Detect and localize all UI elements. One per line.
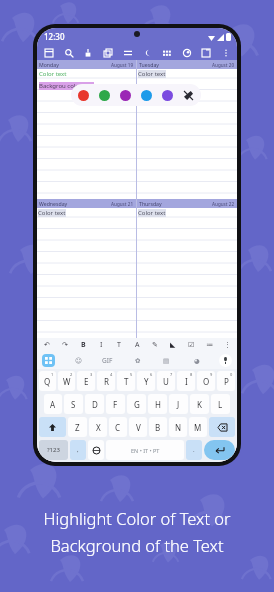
staticText: Backgrou color text [39, 82, 94, 90]
button[interactable]: No color [183, 90, 194, 101]
button[interactable]: O [197, 371, 215, 391]
button[interactable]: M [189, 417, 207, 437]
button[interactable]: T [117, 371, 135, 391]
button[interactable]: C [109, 417, 127, 437]
staticText: 8 [190, 372, 193, 377]
button[interactable]: Toolbar action 3 [82, 47, 93, 58]
staticText: B [155, 422, 161, 433]
button[interactable]: Space [106, 440, 184, 460]
staticText: A [50, 399, 56, 410]
button[interactable]: Toolbar action 5 [122, 47, 133, 58]
staticText: Y [144, 376, 149, 387]
staticText: 3 [90, 372, 93, 377]
button[interactable]: V [129, 417, 147, 437]
button[interactable]: Key 1 [101, 354, 114, 367]
button[interactable]: Thursday [137, 199, 237, 338]
button[interactable]: F [106, 394, 125, 414]
staticText: I [185, 376, 188, 387]
button[interactable]: Format 10 [221, 339, 233, 351]
staticText: August 19 [111, 62, 134, 68]
button[interactable]: Emoji [70, 440, 86, 460]
staticText: ⋮ [224, 341, 231, 349]
button[interactable]: Format 6 [149, 339, 161, 351]
button[interactable]: Backspace [209, 417, 235, 437]
staticText: Monday [39, 61, 59, 68]
button[interactable]: H [148, 394, 167, 414]
button[interactable]: Format 3 [95, 339, 107, 351]
staticText: A [135, 340, 140, 350]
button[interactable]: Format 7 [167, 339, 179, 351]
button[interactable]: Toolbar action 1 [43, 47, 54, 58]
staticText: 4 [110, 372, 113, 377]
button[interactable]: Toolbar action 4 [102, 47, 113, 58]
staticText: 1 [51, 372, 54, 377]
staticText: 12:30 [44, 31, 65, 42]
staticText: J [177, 399, 180, 410]
button[interactable]: Toolbar action 2 [63, 47, 74, 58]
staticText: H [155, 399, 161, 410]
button[interactable]: Color 2 [120, 90, 131, 101]
staticText: Z [75, 422, 80, 433]
staticText: . [193, 446, 195, 454]
button[interactable]: G [127, 394, 146, 414]
button[interactable]: Z [68, 417, 87, 437]
staticText: M [194, 422, 202, 433]
button[interactable]: Language [88, 440, 104, 460]
staticText: D [92, 399, 98, 410]
button[interactable]: Format 5 [131, 339, 143, 351]
button[interactable]: Toolbar action 9 [200, 47, 211, 58]
staticText: ?123 [47, 446, 60, 454]
button[interactable]: Format 8 [185, 339, 197, 351]
button[interactable]: E [77, 371, 95, 391]
button[interactable]: B [149, 417, 167, 437]
button[interactable]: Toolbar action 6 [141, 47, 152, 58]
button[interactable]: L [211, 394, 230, 414]
button[interactable]: S [64, 394, 83, 414]
button[interactable]: Key 4 [190, 354, 203, 367]
button[interactable]: Format 9 [203, 339, 215, 351]
button[interactable]: Color 4 [162, 90, 173, 101]
staticText: 5 [130, 372, 133, 377]
button[interactable]: R [97, 371, 115, 391]
staticText: ↶ [44, 341, 50, 349]
button[interactable]: Q [39, 371, 56, 391]
button[interactable]: Key 0 [72, 354, 85, 367]
button[interactable]: Shift [39, 417, 66, 437]
button[interactable]: N [169, 417, 187, 437]
button[interactable]: Tuesday [137, 60, 237, 199]
button[interactable]: Key 3 [160, 354, 173, 367]
button[interactable]: X [89, 417, 107, 437]
button[interactable]: Voice input [219, 354, 232, 367]
button[interactable]: Keyboard [42, 354, 55, 367]
button[interactable]: Wednesday [37, 199, 136, 338]
button[interactable]: Format 4 [113, 339, 125, 351]
staticText: ☑ [188, 341, 195, 349]
button[interactable]: Toolbar action 7 [161, 47, 172, 58]
button[interactable]: W [58, 371, 75, 391]
button[interactable]: Enter [204, 440, 235, 460]
button[interactable]: Color 1 [99, 90, 110, 101]
button[interactable]: K [190, 394, 209, 414]
button[interactable]: Y [137, 371, 155, 391]
button[interactable]: U [157, 371, 175, 391]
button[interactable]: Key 2 [131, 354, 144, 367]
staticText: N [175, 422, 182, 433]
button[interactable]: A [44, 394, 62, 414]
button[interactable]: Format 2 [77, 339, 89, 351]
button[interactable]: Format 1 [59, 339, 71, 351]
button[interactable]: J [169, 394, 188, 414]
button[interactable]: Period [186, 440, 202, 460]
button[interactable]: P [217, 371, 235, 391]
button[interactable]: D [85, 394, 104, 414]
staticText: B [81, 340, 86, 350]
button[interactable]: Toolbar action 8 [181, 47, 192, 58]
button[interactable]: Toolbar action 10 [220, 47, 231, 58]
staticText: ▤ [163, 357, 170, 365]
staticText: V [136, 422, 141, 433]
button[interactable]: Color 0 [78, 90, 89, 101]
button[interactable]: Format 0 [41, 339, 53, 351]
button[interactable]: I [177, 371, 195, 391]
button[interactable]: Symbols [39, 440, 68, 460]
button[interactable]: Monday [37, 60, 136, 199]
button[interactable]: Color 3 [141, 90, 152, 101]
